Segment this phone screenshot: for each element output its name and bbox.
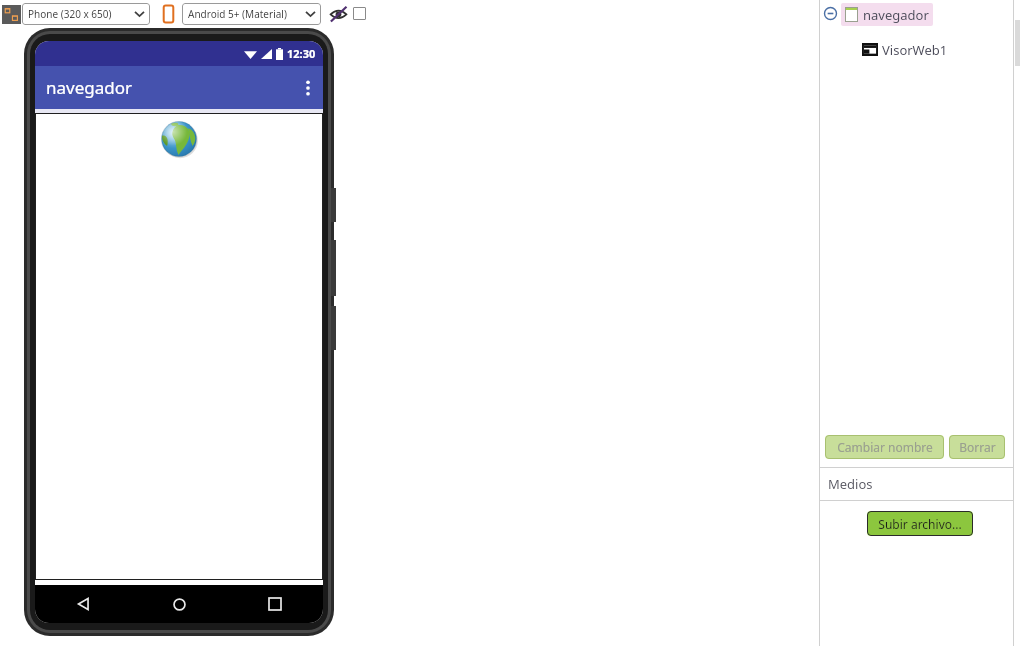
staticText: VisorWeb1: [882, 41, 948, 59]
staticText: Android 5+ (Material): [188, 7, 306, 21]
button[interactable]: Subir archivo...: [867, 511, 973, 536]
button[interactable]: Recent apps: [227, 585, 323, 623]
staticText: Medios: [828, 475, 873, 493]
button[interactable]: Cambiar nombre: [825, 435, 944, 459]
button[interactable]: VisorWeb1: [860, 39, 950, 60]
button[interactable]: More options: [293, 73, 323, 103]
button[interactable]: Preview size: [161, 4, 176, 24]
button[interactable]: navegador: [841, 3, 933, 26]
staticText: Cambiar nombre: [837, 439, 933, 455]
staticText: 12:30: [287, 46, 316, 61]
button[interactable]: Phone (320 x 650): [22, 3, 150, 25]
staticText: navegador: [863, 6, 929, 24]
button[interactable]: Android 5+ (Material): [182, 3, 321, 25]
button[interactable]: Web viewer: [160, 120, 198, 158]
button[interactable]: Toggle panel: [2, 5, 21, 24]
button[interactable]: Collapse: [824, 7, 837, 20]
button[interactable]: Checkbox: [353, 7, 366, 20]
staticText: Borrar: [959, 439, 996, 455]
button[interactable]: Borrar: [949, 435, 1005, 459]
button[interactable]: Show hidden components: [329, 5, 348, 23]
button[interactable]: Home: [131, 585, 227, 623]
staticText: Phone (320 x 650): [28, 7, 135, 21]
button[interactable]: Back: [35, 585, 131, 623]
staticText: Subir archivo...: [878, 516, 962, 532]
staticText: navegador: [46, 76, 133, 99]
